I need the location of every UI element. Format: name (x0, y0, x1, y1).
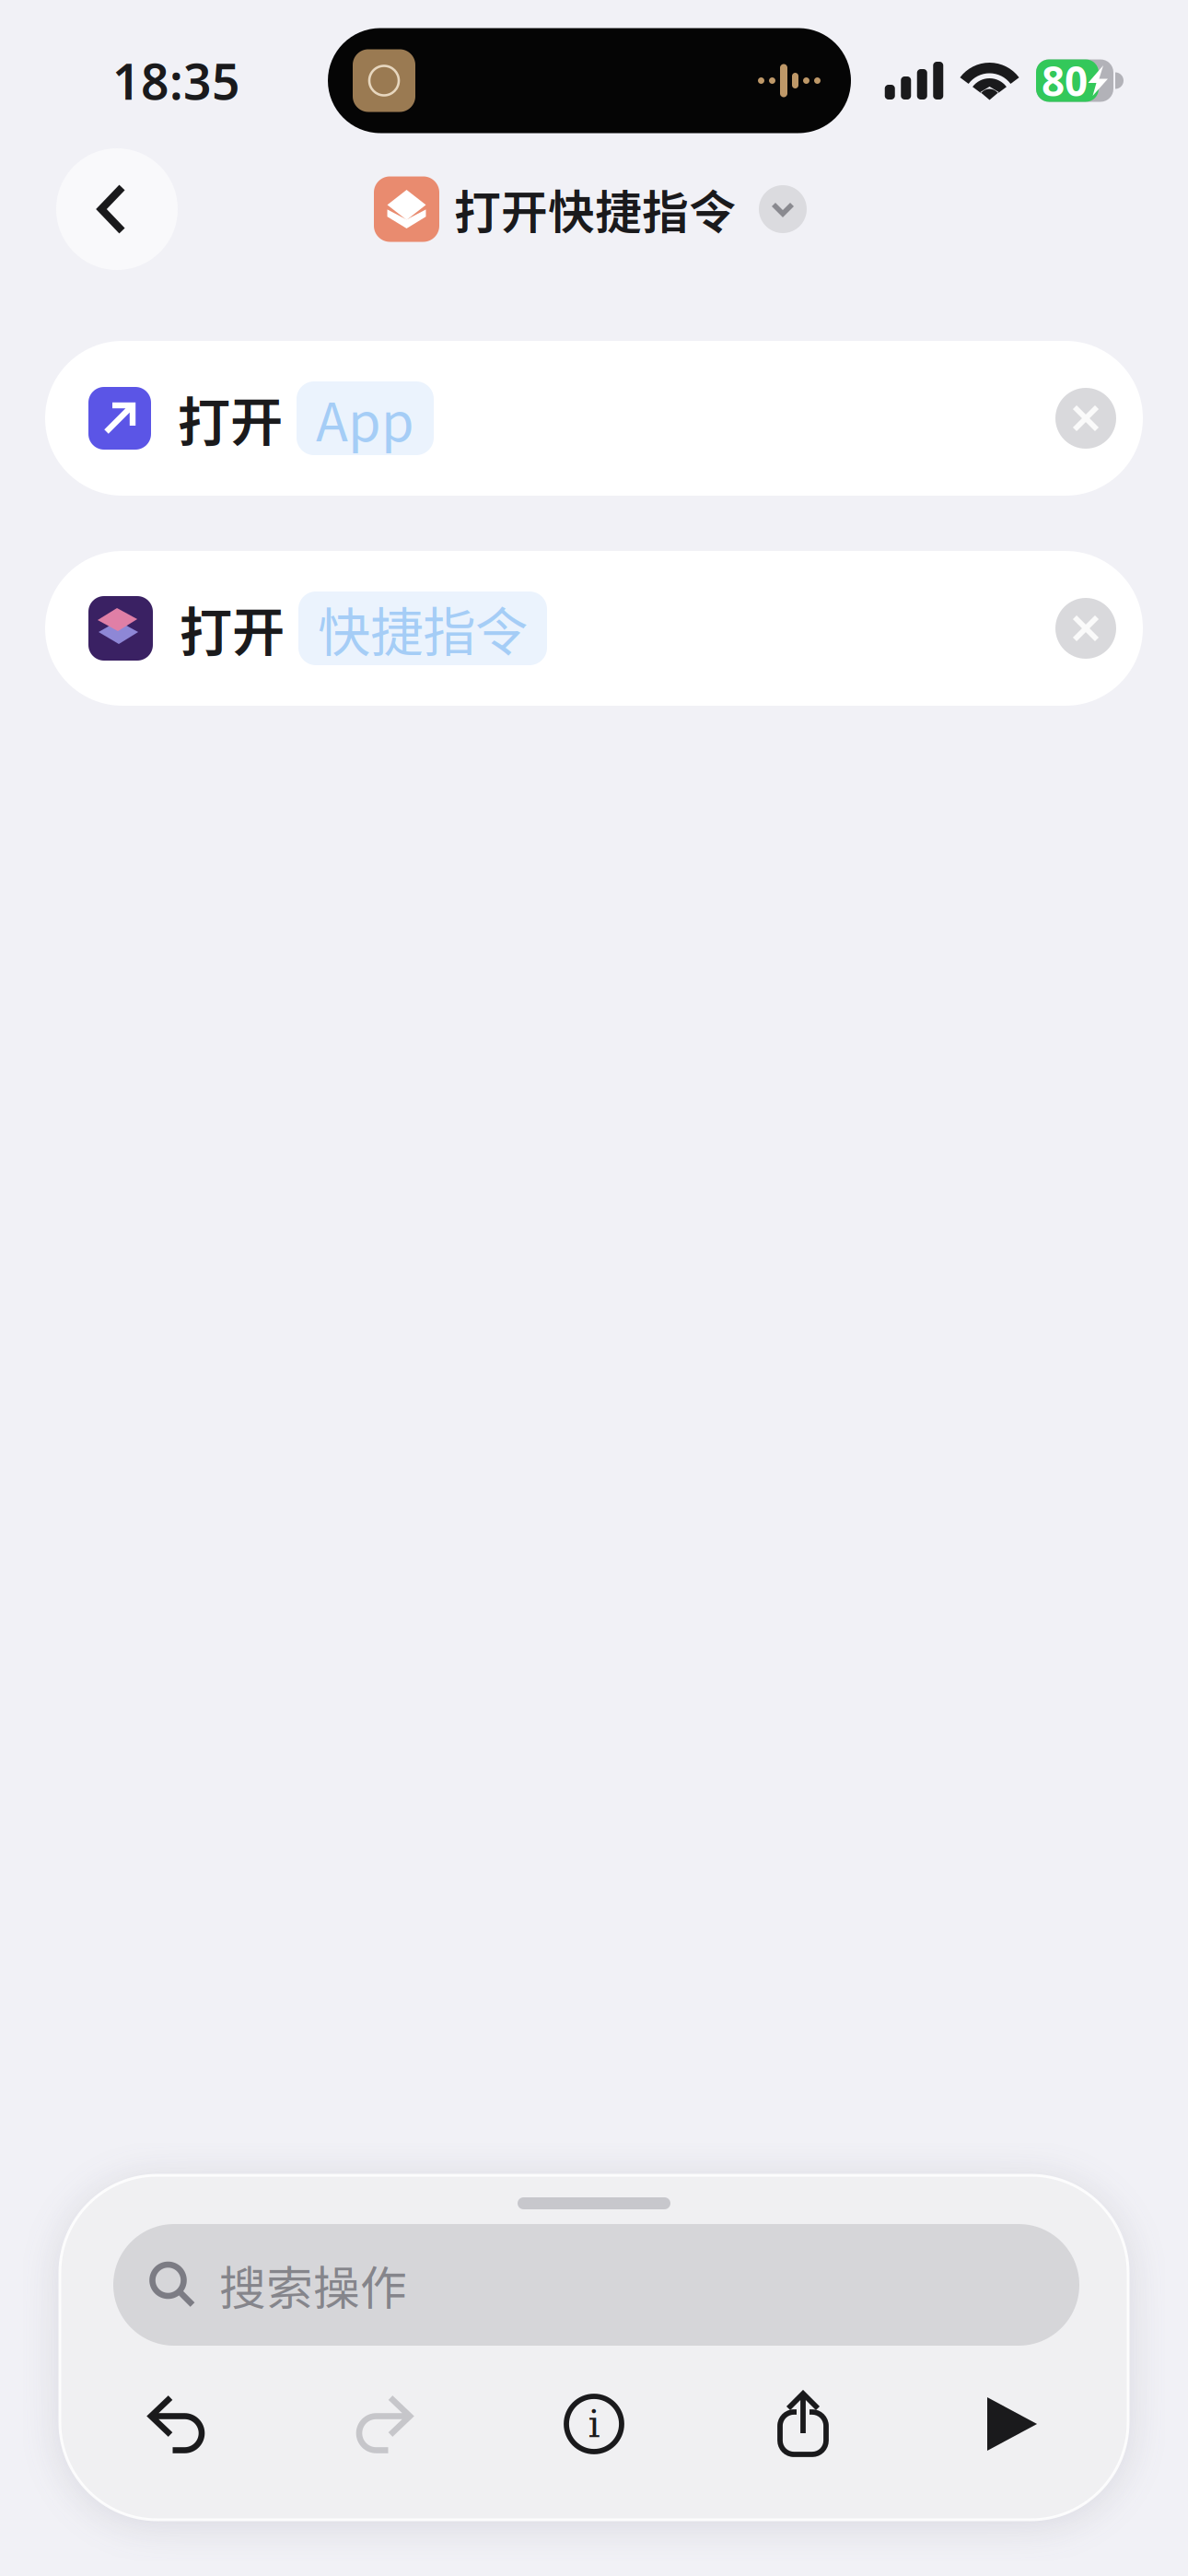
button[interactable]: Redo (280, 2372, 489, 2476)
staticText: 快捷指令 (318, 590, 528, 667)
staticText: 打开 (180, 590, 285, 667)
button[interactable]: Undo (71, 2372, 280, 2476)
button[interactable]: 打开 (45, 341, 1143, 496)
staticText: i (588, 2402, 600, 2446)
staticText: 打开 (178, 380, 283, 457)
button[interactable]: 搜索操作 (113, 2224, 1079, 2346)
button[interactable]: 打开快捷指令 (374, 175, 814, 243)
button[interactable]: Share (699, 2372, 908, 2476)
button[interactable]: Run (908, 2372, 1117, 2476)
staticText: 搜索操作 (219, 2251, 407, 2319)
staticText: App (316, 380, 414, 457)
staticText: 18:35 (112, 48, 240, 113)
button[interactable]: Details (489, 2372, 699, 2476)
staticText: 打开快捷指令 (454, 175, 736, 243)
button[interactable]: 打开 (45, 551, 1143, 706)
button[interactable]: Back (56, 148, 178, 270)
staticText: 80 (1042, 54, 1088, 108)
